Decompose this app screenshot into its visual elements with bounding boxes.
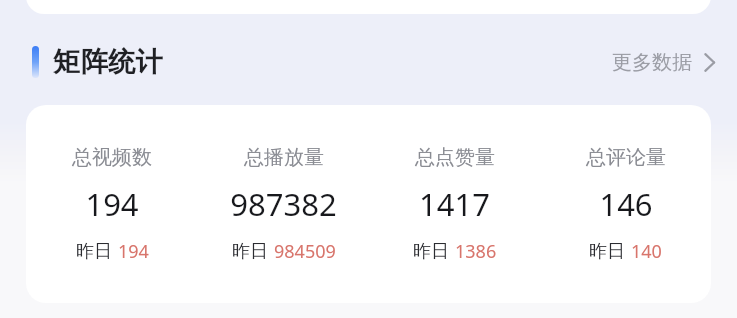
staticText: 昨日 [413,240,449,263]
staticText: 146 [599,183,653,225]
staticText: 140 [631,239,662,264]
staticText: 1386 [455,239,497,264]
staticText: 总视频数 [72,145,152,170]
staticText: 194 [85,183,139,225]
staticText: 更多数据 [612,50,692,75]
staticText: 总评论量 [586,145,666,170]
staticText: 194 [118,239,149,264]
staticText: 总播放量 [244,145,324,170]
button[interactable]: 总视频数 [26,105,198,303]
staticText: 总点赞量 [415,145,495,170]
button[interactable]: 总播放量 [198,105,369,303]
staticText: 987382 [230,183,337,225]
staticText: 984509 [274,239,336,264]
staticText: 昨日 [76,240,112,263]
staticText: 矩阵统计 [53,45,163,79]
staticText: 1417 [419,183,490,225]
staticText: 昨日 [232,240,268,263]
button[interactable]: 总点赞量 [369,105,540,303]
button[interactable]: 总评论量 [540,105,711,303]
button[interactable]: 更多数据 [602,44,725,81]
staticText: 昨日 [589,240,625,263]
